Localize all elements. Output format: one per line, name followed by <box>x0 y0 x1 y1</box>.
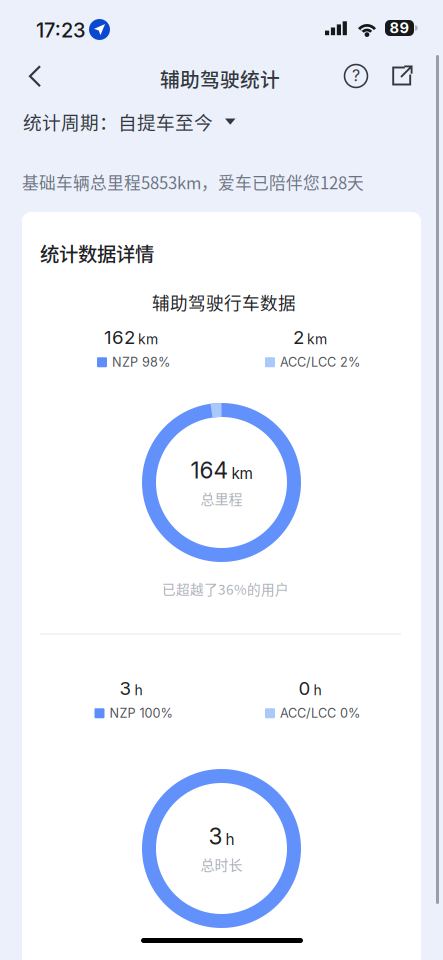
staticText: 164 <box>190 457 228 484</box>
staticText: NZP 100% <box>109 706 172 721</box>
button[interactable]: 统计周期： <box>17 100 242 143</box>
button[interactable]: Back <box>12 52 58 100</box>
staticText: 3 <box>119 677 131 700</box>
staticText: 3 <box>208 823 222 850</box>
staticText: km <box>307 331 327 347</box>
staticText: ACC/LCC 0% <box>280 706 360 721</box>
staticText: 89 <box>389 19 409 37</box>
staticText: 总时长 <box>200 854 242 874</box>
staticText: 已超越了36%的用户 <box>162 579 289 599</box>
staticText: km <box>138 331 158 347</box>
staticText: 2 <box>293 326 304 349</box>
staticText: 基础车辆总里程5853km，爱车已陪伴您128天 <box>22 170 364 194</box>
button[interactable]: Share <box>379 52 427 100</box>
staticText: ACC/LCC 2% <box>280 355 360 370</box>
button[interactable]: Help <box>332 52 380 100</box>
staticText: 统计周期： <box>23 108 118 135</box>
staticText: 162 <box>104 326 135 349</box>
staticText: 17:23 <box>36 18 86 42</box>
staticText: NZP 98% <box>112 355 170 370</box>
staticText: 自提车至今 <box>118 108 213 135</box>
staticText: 总里程 <box>200 488 242 508</box>
staticText: h <box>134 682 142 698</box>
staticText: km <box>231 464 252 483</box>
staticText: 辅助驾驶统计 <box>160 64 280 93</box>
staticText: ? <box>352 66 360 85</box>
staticText: 0 <box>298 677 310 700</box>
staticText: h <box>313 682 321 698</box>
staticText: 辅助驾驶行车数据 <box>152 289 296 314</box>
staticText: h <box>225 830 234 849</box>
staticText: 统计数据详情 <box>40 239 154 267</box>
